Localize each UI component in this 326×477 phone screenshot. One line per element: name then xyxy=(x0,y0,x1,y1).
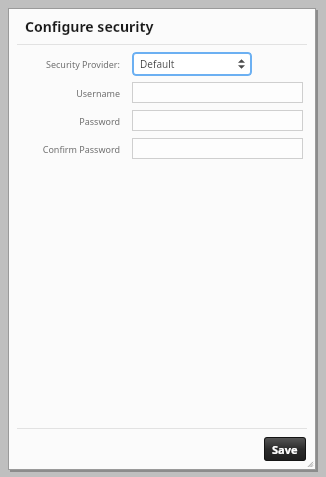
button[interactable]: Default xyxy=(132,52,252,76)
staticText: Confirm Password xyxy=(28,143,120,155)
other: Resize xyxy=(305,459,313,467)
button[interactable] xyxy=(132,110,303,131)
staticText: Password xyxy=(28,115,120,127)
staticText: Configure security xyxy=(25,17,154,36)
button[interactable] xyxy=(132,82,303,103)
staticText: Security Provider: xyxy=(28,58,120,70)
staticText: Username xyxy=(28,87,120,99)
button[interactable] xyxy=(132,138,303,159)
staticText: Default xyxy=(140,57,175,71)
button[interactable]: Save xyxy=(264,437,306,461)
staticText: Save xyxy=(272,442,298,457)
